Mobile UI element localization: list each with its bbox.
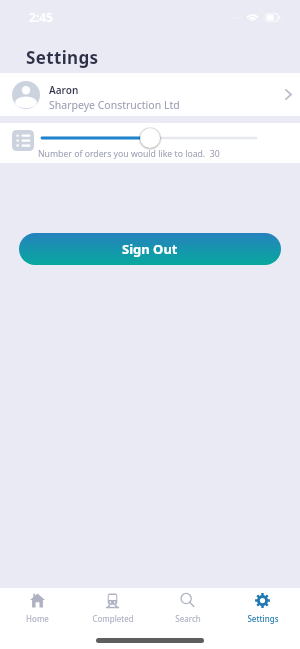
staticText: Home: [26, 613, 49, 624]
staticText: Sign Out: [122, 240, 178, 258]
button[interactable]: Settings: [225, 588, 300, 628]
staticText: Number of orders you would like to load.…: [38, 148, 220, 160]
staticText: Aaron: [49, 83, 79, 97]
button[interactable]: Sign Out: [19, 233, 281, 265]
button[interactable]: Completed: [75, 588, 150, 628]
staticText: Search: [175, 613, 201, 624]
staticText: Settings: [26, 46, 99, 69]
button[interactable]: Aaron: [0, 73, 300, 116]
staticText: Completed: [92, 613, 134, 624]
button[interactable]: Search: [150, 588, 225, 628]
staticText: Sharpeye Construction Ltd: [49, 98, 180, 112]
staticText: 2:45: [29, 9, 53, 25]
staticText: Settings: [247, 613, 279, 624]
button[interactable]: Home: [0, 588, 75, 628]
